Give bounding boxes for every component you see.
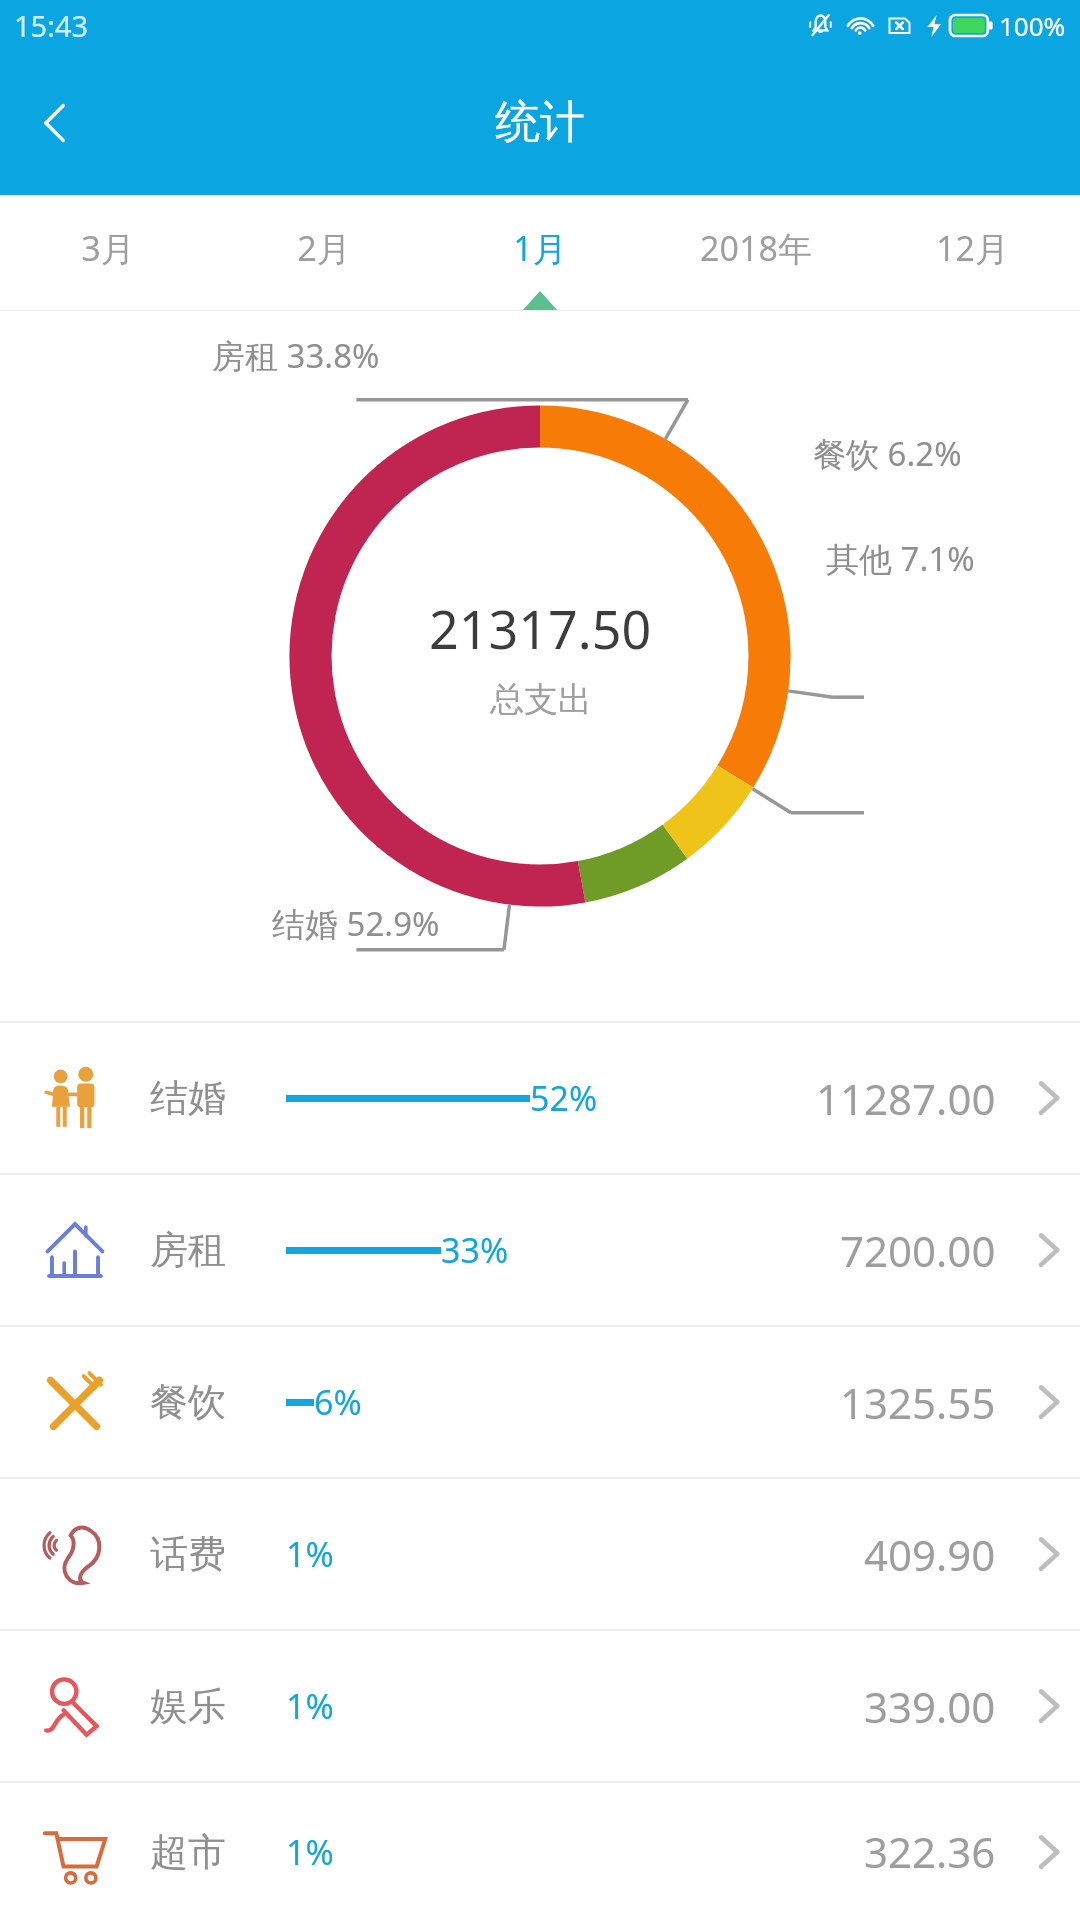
button[interactable]: 3月 xyxy=(0,195,216,310)
staticText: 1% xyxy=(286,1531,334,1577)
button[interactable]: 2月 xyxy=(216,195,432,310)
button[interactable]: 超市 xyxy=(0,1783,1080,1920)
staticText: 12月 xyxy=(936,225,1009,271)
staticText: 娱乐 xyxy=(150,1682,226,1730)
button[interactable]: 房租 xyxy=(0,1175,1080,1325)
staticText: 6% xyxy=(314,1379,362,1425)
staticText: 总支出 xyxy=(490,678,592,721)
staticText: 其他 7.1% xyxy=(826,536,975,581)
staticText: 餐饮 xyxy=(150,1378,226,1426)
staticText: 322.36 xyxy=(864,1823,996,1880)
button[interactable]: 娱乐 xyxy=(0,1631,1080,1781)
staticText: 餐饮 6.2% xyxy=(813,431,962,476)
staticText: 100% xyxy=(999,8,1066,43)
staticText: 1% xyxy=(286,1683,334,1729)
staticText: 结婚 52.9% xyxy=(272,901,440,946)
staticText: 15:43 xyxy=(14,6,89,45)
staticText: 房租 33.8% xyxy=(212,333,380,378)
staticText: 1325.55 xyxy=(840,1374,996,1431)
staticText: 1% xyxy=(286,1829,334,1875)
staticText: 339.00 xyxy=(864,1678,996,1735)
button[interactable]: 1月 xyxy=(432,195,648,310)
staticText: 3月 xyxy=(81,225,135,271)
staticText: 结婚 xyxy=(150,1074,226,1122)
button[interactable]: 结婚 xyxy=(0,1023,1080,1173)
button[interactable]: 餐饮 xyxy=(0,1327,1080,1477)
staticText: 7200.00 xyxy=(840,1222,996,1279)
button[interactable]: Back xyxy=(0,68,110,178)
staticText: 话费 xyxy=(150,1530,226,1578)
staticText: 1月 xyxy=(513,225,567,271)
staticText: 33% xyxy=(441,1227,509,1273)
button[interactable]: 话费 xyxy=(0,1479,1080,1629)
staticText: 52% xyxy=(530,1075,598,1121)
staticText: 超市 xyxy=(150,1828,226,1876)
staticText: 409.90 xyxy=(864,1526,996,1583)
button[interactable]: 2018年 xyxy=(648,195,864,310)
button[interactable]: 12月 xyxy=(864,195,1080,310)
staticText: 2018年 xyxy=(700,225,812,271)
staticText: 11287.00 xyxy=(816,1070,996,1127)
staticText: 2月 xyxy=(297,225,351,271)
staticText: 21317.50 xyxy=(429,593,652,664)
staticText: 房租 xyxy=(150,1226,226,1274)
staticText: 统计 xyxy=(495,94,585,151)
